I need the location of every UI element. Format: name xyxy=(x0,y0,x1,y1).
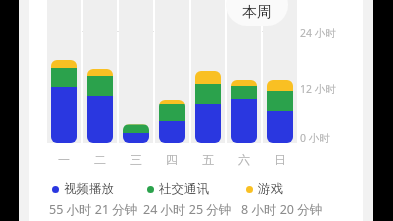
staticText: 12 小时 xyxy=(300,82,336,96)
staticText: 视频播放 xyxy=(64,181,114,197)
button[interactable] xyxy=(123,124,149,143)
button[interactable] xyxy=(195,71,221,143)
button[interactable]: 社交通讯 xyxy=(147,180,209,198)
button[interactable] xyxy=(231,80,257,143)
button[interactable] xyxy=(159,100,185,143)
staticText: 社交通讯 xyxy=(159,181,209,197)
staticText: 六 xyxy=(238,152,250,167)
button[interactable] xyxy=(87,69,113,143)
staticText: 55 小时 21 分钟 xyxy=(49,201,138,218)
staticText: 游戏 xyxy=(258,181,283,197)
button[interactable]: 游戏 xyxy=(246,180,283,198)
staticText: 24 小时 25 分钟 xyxy=(143,201,232,218)
staticText: 8 小时 20 分钟 xyxy=(241,201,323,218)
staticText: 五 xyxy=(202,152,214,167)
button[interactable] xyxy=(267,80,293,143)
button[interactable]: 视频播放 xyxy=(52,180,114,198)
staticText: 四 xyxy=(166,152,178,167)
staticText: 二 xyxy=(94,152,106,167)
staticText: 三 xyxy=(130,152,142,167)
button[interactable] xyxy=(51,60,77,143)
staticText: 本周 xyxy=(242,3,272,22)
staticText: 24 小时 xyxy=(300,26,336,40)
staticText: 0 小时 xyxy=(300,131,330,145)
button[interactable]: 本周 xyxy=(226,0,288,26)
staticText: 一 xyxy=(58,152,70,167)
staticText: 日 xyxy=(274,152,286,167)
